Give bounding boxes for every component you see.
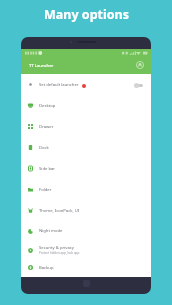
button[interactable]: Drawer	[21, 116, 151, 137]
staticText: TT Launcher	[29, 63, 54, 69]
staticText: Side bar	[39, 166, 56, 172]
button[interactable]: Side bar	[21, 158, 151, 179]
staticText: Drawer	[39, 124, 54, 130]
staticText: Desktop	[39, 103, 56, 109]
staticText: Set default launcher	[39, 82, 79, 88]
button[interactable]: Security & privacy	[21, 241, 151, 259]
button[interactable]: Theme, IconPack, UI	[21, 200, 151, 221]
button[interactable]: Backup	[21, 259, 151, 276]
button[interactable]: Night mode	[21, 221, 151, 241]
staticText: Protect hidden app, lock app	[39, 251, 80, 255]
button[interactable]: Set default launcher	[21, 74, 151, 95]
button[interactable]: Folder	[21, 179, 151, 200]
button[interactable]: Profile	[133, 58, 146, 71]
staticText: Security & privacy	[39, 245, 74, 251]
staticText: Night mode	[39, 228, 63, 234]
button[interactable]: Desktop	[21, 95, 151, 116]
staticText: Folder	[39, 187, 52, 193]
staticText: Theme, IconPack, UI	[39, 208, 80, 214]
staticText: Backup	[39, 265, 54, 271]
staticText: Many options	[44, 6, 129, 23]
button[interactable]: Dock	[21, 137, 151, 158]
staticText: Dock	[39, 145, 49, 151]
